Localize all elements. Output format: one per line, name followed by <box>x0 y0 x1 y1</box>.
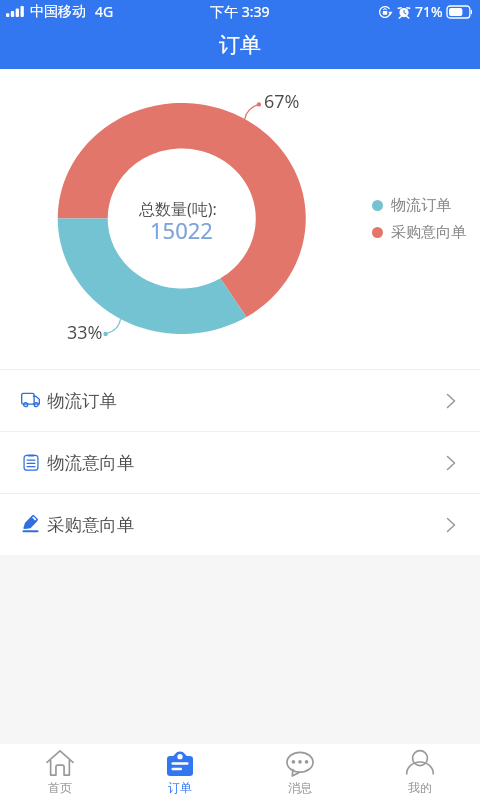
button[interactable]: 物流意向单 <box>0 432 480 493</box>
staticText: 我的 <box>408 780 432 795</box>
staticText: 采购意向单 <box>391 223 466 242</box>
button[interactable]: 采购意向单 <box>0 494 480 555</box>
staticText: 物流订单 <box>391 196 451 215</box>
staticText: 15022 <box>150 215 213 245</box>
staticText: 订单 <box>219 32 261 58</box>
staticText: 71% <box>415 2 443 21</box>
staticText: 下午 3:39 <box>210 2 270 21</box>
staticText: 首页 <box>48 780 72 795</box>
button[interactable]: 首页 <box>0 744 120 800</box>
button[interactable]: 订单 <box>120 744 240 800</box>
other: Alarm <box>398 6 410 18</box>
staticText: 67% <box>264 89 300 114</box>
other: Rotation lock <box>379 6 391 18</box>
staticText: 订单 <box>168 780 192 795</box>
staticText: 采购意向单 <box>47 514 135 536</box>
staticText: 总数量(吨): <box>139 198 217 220</box>
staticText: 中国移动 <box>30 3 86 21</box>
staticText: 消息 <box>288 780 312 795</box>
staticText: 物流意向单 <box>47 452 135 474</box>
staticText: 4G <box>95 2 114 21</box>
button[interactable]: 我的 <box>360 744 480 800</box>
button[interactable]: 消息 <box>240 744 360 800</box>
staticText: 物流订单 <box>47 390 117 412</box>
button[interactable]: 物流订单 <box>0 370 480 431</box>
staticText: 33% <box>67 320 103 345</box>
